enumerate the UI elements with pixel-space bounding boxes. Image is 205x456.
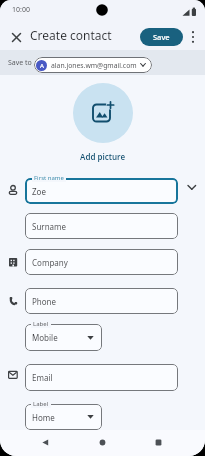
button[interactable]: Phone: [32, 288, 178, 314]
button[interactable]: [187, 28, 198, 45]
staticText: Label: [33, 320, 49, 328]
staticText: Save to: [8, 58, 32, 68]
button[interactable]: [95, 435, 109, 449]
staticText: Email: [32, 372, 53, 383]
staticText: 10:00: [12, 5, 30, 15]
staticText: Zoe: [32, 186, 46, 197]
staticText: First name: [34, 174, 64, 182]
button[interactable]: Add picture: [0, 150, 205, 162]
staticText: Add picture: [80, 151, 126, 162]
button[interactable]: Home: [32, 404, 102, 430]
button[interactable]: Mobile: [32, 324, 102, 351]
staticText: Create contact: [30, 27, 112, 43]
button[interactable]: Email: [32, 364, 178, 391]
button[interactable]: Zoe: [32, 178, 178, 204]
staticText: A: [40, 62, 44, 70]
staticText: Company: [32, 257, 68, 268]
button[interactable]: [38, 435, 52, 449]
button[interactable]: [151, 435, 165, 449]
staticText: Phone: [32, 296, 57, 307]
staticText: Mobile: [32, 332, 58, 343]
staticText: Save: [153, 32, 170, 42]
button[interactable]: Company: [32, 249, 178, 275]
button[interactable]: A: [34, 57, 152, 73]
button[interactable]: [73, 83, 133, 143]
staticText: Home: [32, 412, 55, 423]
staticText: Label: [33, 400, 49, 408]
staticText: Surname: [32, 221, 67, 232]
staticText: alan.jones.wm@gmail.com: [51, 61, 137, 70]
button[interactable]: Save: [140, 28, 183, 46]
button[interactable]: Surname: [32, 213, 178, 239]
button[interactable]: [8, 29, 24, 45]
